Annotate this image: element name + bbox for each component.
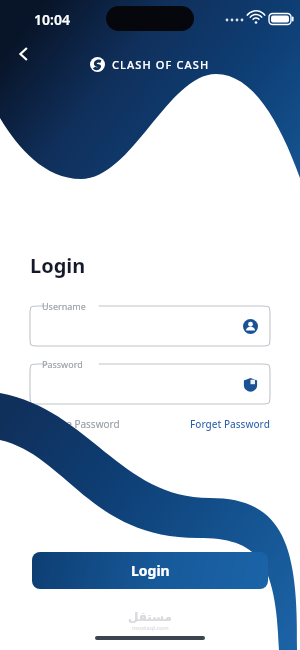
staticText: mostaql.com xyxy=(132,624,169,632)
button[interactable]: Save Password xyxy=(30,417,120,431)
button[interactable]: Back xyxy=(4,34,44,74)
staticText: 10:04 xyxy=(34,10,70,29)
staticText: Password xyxy=(42,358,83,370)
staticText: Save Password xyxy=(50,417,120,431)
staticText: CLASH OF CASH xyxy=(112,57,210,72)
staticText: Login xyxy=(30,252,86,279)
button[interactable]: Forget Password xyxy=(190,417,270,431)
staticText: Login xyxy=(131,561,170,580)
staticText: Forget Password xyxy=(190,417,270,431)
button[interactable]: Password xyxy=(30,359,270,404)
staticText: Username xyxy=(42,300,86,312)
button[interactable]: Login xyxy=(32,552,268,589)
button[interactable]: Username xyxy=(30,301,270,346)
button[interactable]: CLASH OF CASH xyxy=(90,57,210,72)
staticText: مستقل xyxy=(128,610,172,624)
